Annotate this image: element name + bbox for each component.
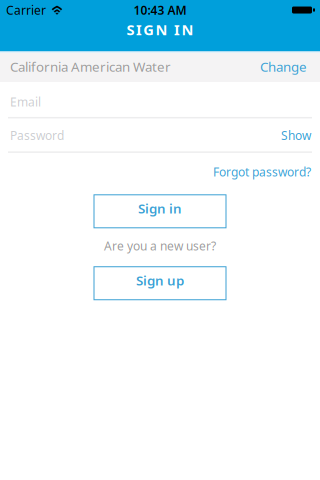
staticText: Password <box>10 127 64 143</box>
staticText: Are you a new user? <box>104 238 216 254</box>
button[interactable]: Forgot password? <box>213 164 311 180</box>
button[interactable]: Show <box>281 127 311 143</box>
staticText: Sign in <box>138 199 182 217</box>
staticText: California American Water <box>10 58 171 75</box>
staticText: Forgot password? <box>213 164 311 180</box>
button[interactable]: Sign in <box>94 195 226 228</box>
staticText: Carrier <box>6 2 46 18</box>
staticText: Show <box>281 127 311 143</box>
staticText: SIGN IN <box>127 20 193 39</box>
staticText: 10:43 AM <box>133 2 186 18</box>
staticText: Sign up <box>136 271 184 289</box>
button[interactable]: Change <box>260 58 307 75</box>
button[interactable]: Sign up <box>94 267 226 300</box>
staticText: Email <box>10 94 41 110</box>
staticText: Change <box>260 58 307 75</box>
